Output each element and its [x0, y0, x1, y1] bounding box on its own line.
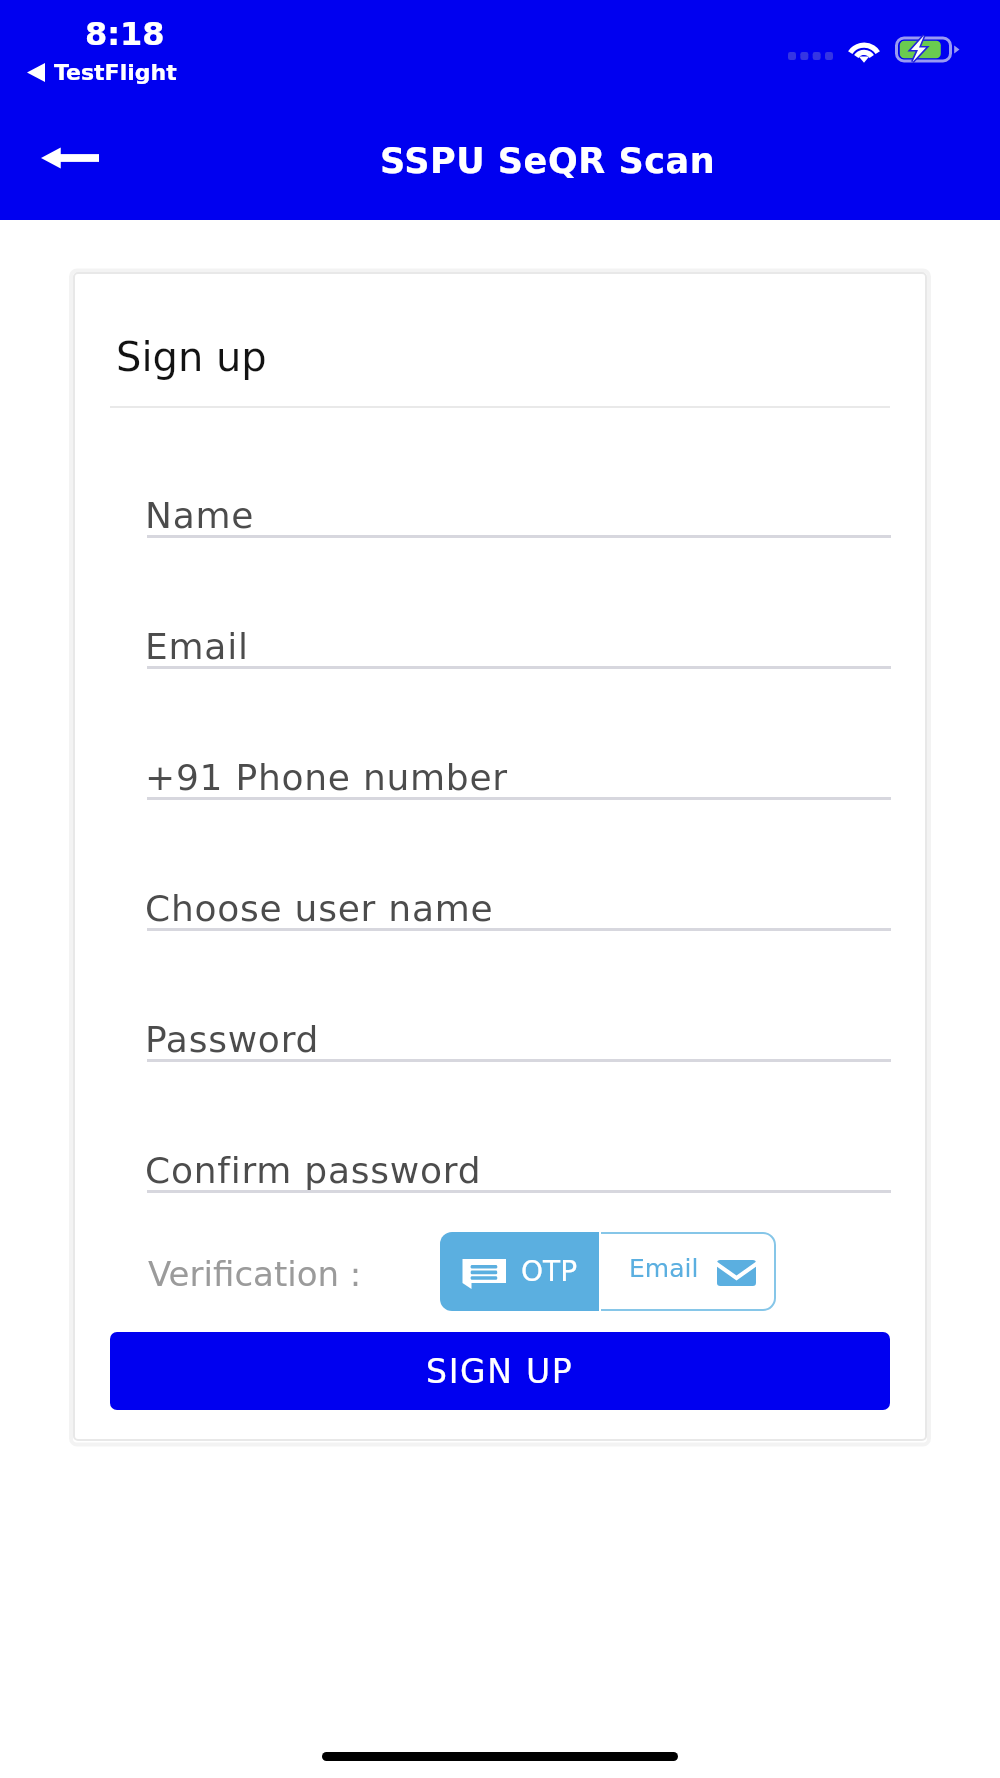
- button[interactable]: Back: [10, 118, 130, 198]
- staticText: SSPU SeQR Scan: [380, 141, 716, 182]
- staticText: Verification :: [148, 1254, 362, 1294]
- button[interactable]: Email: [601, 1232, 777, 1311]
- staticText: Sign up: [116, 334, 267, 381]
- staticText: Email: [629, 1254, 699, 1283]
- staticText: Choose user name: [145, 888, 494, 930]
- staticText: OTP: [521, 1255, 578, 1288]
- staticText: TestFlight: [54, 60, 177, 86]
- staticText: 8:18: [85, 15, 165, 52]
- button[interactable]: OTP: [440, 1232, 599, 1311]
- button[interactable]: Email: [145, 611, 891, 667]
- button[interactable]: +91 Phone number: [145, 742, 891, 798]
- button[interactable]: Choose user name: [145, 873, 891, 929]
- staticText: Password: [145, 1019, 320, 1061]
- staticText: Name: [145, 495, 255, 537]
- staticText: Email: [145, 626, 249, 668]
- button[interactable]: Name: [145, 480, 891, 536]
- button[interactable]: Confirm password: [145, 1135, 891, 1191]
- button[interactable]: SIGN UP: [110, 1332, 890, 1410]
- staticText: +91 Phone number: [145, 757, 508, 799]
- staticText: SIGN UP: [426, 1352, 574, 1390]
- staticText: Confirm password: [145, 1150, 482, 1192]
- button[interactable]: Password: [145, 1004, 891, 1060]
